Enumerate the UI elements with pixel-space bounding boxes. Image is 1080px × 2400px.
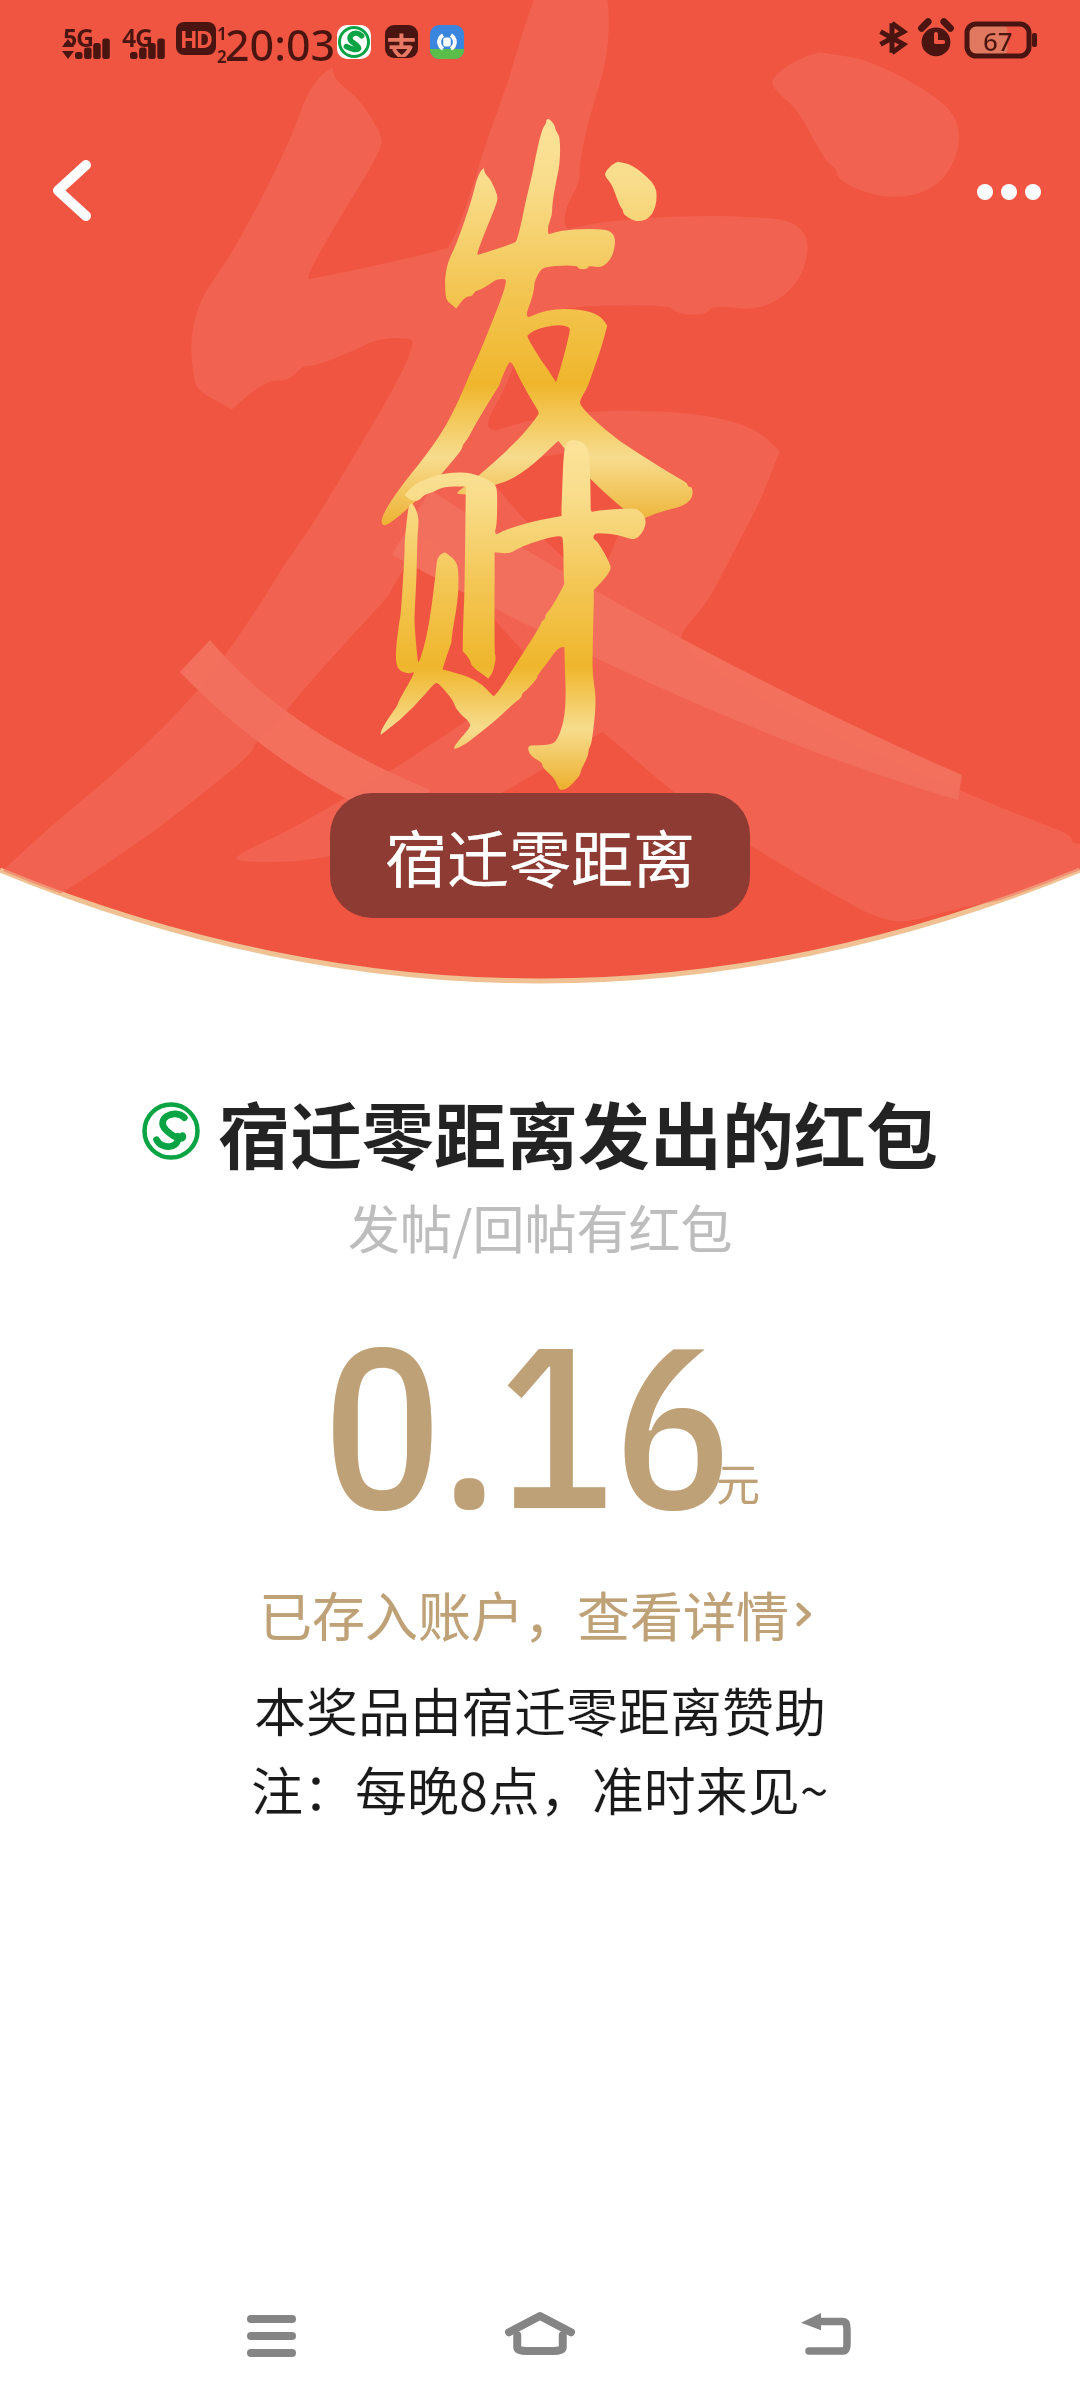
button[interactable]: More options [964, 147, 1054, 237]
button[interactable]: Back [753, 2253, 897, 2397]
button[interactable]: Back [27, 145, 117, 235]
staticText: 4G [122, 20, 153, 54]
staticText: 元 [716, 1450, 760, 1514]
staticText: 支 [386, 25, 417, 57]
staticText: 发帖/回帖有红包 [348, 1189, 733, 1264]
staticText: 0.16 [324, 1274, 732, 1570]
staticText: 发 [0, 0, 1080, 973]
staticText: 已存入账户，查看详情 [259, 1576, 789, 1653]
staticText: 发 [360, 80, 713, 540]
button[interactable]: Recent apps [199, 2250, 343, 2394]
button[interactable]: 宿迁零距离 [330, 793, 750, 918]
staticText: 宿迁零距离发出的红包 [218, 1079, 939, 1183]
button[interactable]: 已存入账户，查看详情 [259, 1576, 821, 1653]
staticText: 本奖品由宿迁零距离赞助 [254, 1672, 827, 1747]
button[interactable]: 宿迁零距离发出的红包 [142, 1079, 939, 1183]
staticText: 注：每晚8点，准时来见~ [251, 1751, 829, 1826]
staticText: 67 [983, 23, 1013, 58]
staticText: 财 [355, 410, 671, 799]
staticText: HD [180, 23, 212, 54]
staticText: 1 [217, 22, 227, 45]
staticText: 20:03 [225, 15, 336, 74]
button[interactable]: Home [468, 2253, 612, 2397]
staticText: 2 [217, 45, 227, 68]
staticText: 5G [63, 20, 94, 54]
staticText: 宿迁零距离 [385, 811, 696, 901]
